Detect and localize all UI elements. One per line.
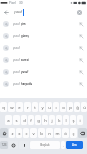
staticText: d [23, 117, 26, 123]
staticText: 123 [1, 143, 7, 147]
button[interactable]: c [23, 128, 29, 138]
staticText: w [10, 104, 14, 110]
staticText: ü [83, 104, 86, 110]
staticText: j [51, 117, 53, 123]
button[interactable]: n [46, 128, 53, 138]
button[interactable]: y [39, 102, 45, 112]
staticText: Ara [72, 143, 77, 147]
button[interactable]: Backspace [78, 128, 87, 138]
button[interactable]: r [24, 102, 31, 112]
button[interactable]: yusuf [0, 42, 87, 54]
button[interactable]: 123 [0, 141, 8, 149]
button[interactable]: yusuf [0, 66, 87, 78]
staticText: ç [72, 130, 75, 136]
button[interactable]: . [61, 141, 65, 149]
button[interactable]: m [54, 128, 61, 138]
staticText: güneş [21, 34, 29, 38]
button[interactable]: h [42, 115, 48, 125]
staticText: yusuf [13, 58, 21, 62]
staticText: f [30, 117, 32, 123]
button[interactable]: ç [70, 128, 77, 138]
staticText: Pixel [9, 1, 16, 5]
staticText: x [18, 130, 21, 136]
button[interactable]: j [49, 115, 55, 125]
staticText: ı [55, 104, 57, 110]
staticText: yusuf [13, 34, 21, 38]
button[interactable]: d [21, 115, 27, 125]
staticText: e [18, 104, 21, 110]
staticText: z [11, 130, 14, 136]
button[interactable]: l [63, 115, 69, 125]
staticText: çim [21, 22, 26, 26]
button[interactable]: Boşluk [30, 141, 60, 149]
button[interactable]: g [35, 115, 41, 125]
button[interactable]: yusuf [0, 18, 87, 30]
staticText: yusuf [13, 22, 21, 26]
button[interactable]: q [0, 102, 7, 112]
staticText: harputlu [21, 82, 33, 86]
staticText: g [37, 117, 40, 123]
button[interactable]: z [9, 128, 15, 138]
button[interactable]: t [32, 102, 38, 112]
button[interactable]: w [8, 102, 15, 112]
staticText: a [7, 117, 10, 123]
staticText: ş [72, 117, 75, 123]
staticText: n [48, 130, 51, 136]
button[interactable]: ı [53, 102, 59, 112]
button[interactable]: a [5, 115, 12, 125]
button[interactable]: yusuf [0, 30, 87, 42]
staticText: r [27, 104, 29, 110]
button[interactable]: ş [70, 115, 76, 125]
button[interactable]: ğ [74, 102, 80, 112]
staticText: suresi [21, 58, 29, 62]
staticText: t [34, 104, 36, 110]
button[interactable]: Back [2, 8, 11, 17]
staticText: s [15, 117, 18, 123]
staticText: p [69, 104, 72, 110]
button[interactable]: b [38, 128, 45, 138]
staticText: u [48, 104, 51, 110]
staticText: h [44, 117, 47, 123]
staticText: k [58, 117, 61, 123]
button[interactable]: k [56, 115, 62, 125]
staticText: yusuf [13, 70, 21, 74]
staticText: 30 [19, 1, 23, 5]
button[interactable]: Clear [75, 8, 84, 17]
button[interactable]: x [16, 128, 22, 138]
staticText: b [40, 130, 43, 136]
button[interactable]: s [13, 115, 20, 125]
staticText: v [32, 130, 35, 136]
button[interactable]: Shift [0, 128, 8, 138]
staticText: yusuf [14, 10, 23, 14]
button[interactable]: p [67, 102, 73, 112]
staticText: ö [64, 130, 67, 136]
button[interactable]: u [46, 102, 52, 112]
button[interactable]: Emoji [9, 141, 18, 149]
staticText: yusuf [13, 82, 21, 86]
staticText: Boşluk [40, 143, 50, 147]
button[interactable]: Voice input [19, 141, 29, 149]
button[interactable]: i [77, 115, 83, 125]
staticText: m [55, 130, 60, 136]
staticText: . [63, 143, 64, 148]
button[interactable]: ö [62, 128, 69, 138]
staticText: o [62, 104, 65, 110]
button[interactable]: ü [81, 102, 87, 112]
button[interactable]: yusuf [0, 54, 87, 66]
staticText: y [41, 104, 44, 110]
staticText: ğ [76, 104, 79, 110]
button[interactable]: Ara [66, 141, 83, 149]
button[interactable]: e [16, 102, 23, 112]
button[interactable]: f [28, 115, 34, 125]
staticText: i [79, 117, 81, 123]
staticText: q [2, 104, 5, 110]
staticText: yusuf [13, 46, 20, 50]
button[interactable]: yusuf [0, 78, 87, 90]
button[interactable]: v [30, 128, 37, 138]
staticText: yusuf [21, 70, 29, 74]
button[interactable]: o [60, 102, 66, 112]
staticText: c [25, 130, 28, 136]
staticText: l [65, 117, 67, 123]
